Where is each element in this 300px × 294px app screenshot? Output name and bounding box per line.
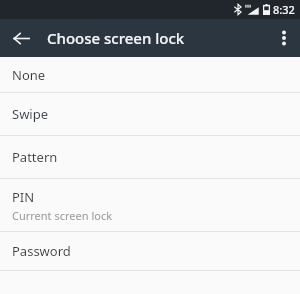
staticText: Current screen lock [12, 208, 113, 223]
staticText: PIN [12, 188, 35, 206]
button[interactable]: None [0, 57, 300, 92]
staticText: 8:32 [273, 2, 295, 17]
button[interactable]: Password [0, 232, 300, 270]
staticText: Swipe [12, 105, 49, 123]
staticText: None [12, 66, 46, 84]
button[interactable]: Navigate up [7, 24, 35, 52]
staticText: Choose screen lock [47, 28, 185, 48]
button[interactable]: More options [270, 24, 298, 52]
button[interactable]: Swipe [0, 93, 300, 135]
staticText: Pattern [12, 148, 58, 166]
staticText: Password [12, 242, 71, 260]
button[interactable]: PIN [0, 179, 300, 231]
button[interactable]: Pattern [0, 136, 300, 178]
